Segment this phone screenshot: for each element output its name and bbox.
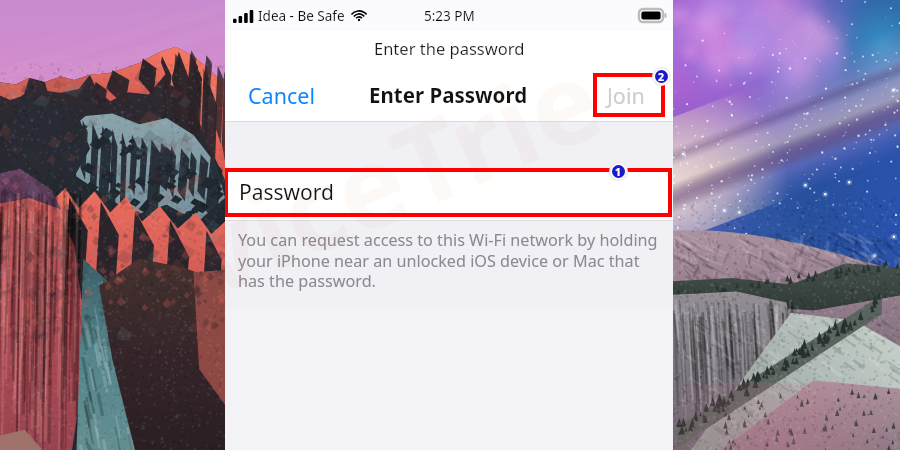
staticText: Password bbox=[239, 178, 334, 207]
staticText: Cancel bbox=[248, 81, 315, 110]
staticText: Enter the password bbox=[374, 37, 525, 59]
staticText: Join bbox=[607, 81, 645, 110]
staticText: 1 bbox=[615, 165, 622, 178]
button[interactable]: Cancel bbox=[238, 73, 325, 118]
staticText: Idea - Be Safe bbox=[258, 7, 345, 25]
button[interactable]: Join bbox=[597, 73, 655, 118]
button[interactable]: Password bbox=[225, 169, 673, 215]
staticText: viceTrie bbox=[225, 19, 622, 329]
staticText: Enter Password bbox=[369, 81, 528, 109]
staticText: You can request access to this Wi-Fi net… bbox=[238, 229, 658, 291]
staticText: 5:23 PM bbox=[424, 7, 475, 25]
staticText: 2 bbox=[658, 70, 665, 83]
